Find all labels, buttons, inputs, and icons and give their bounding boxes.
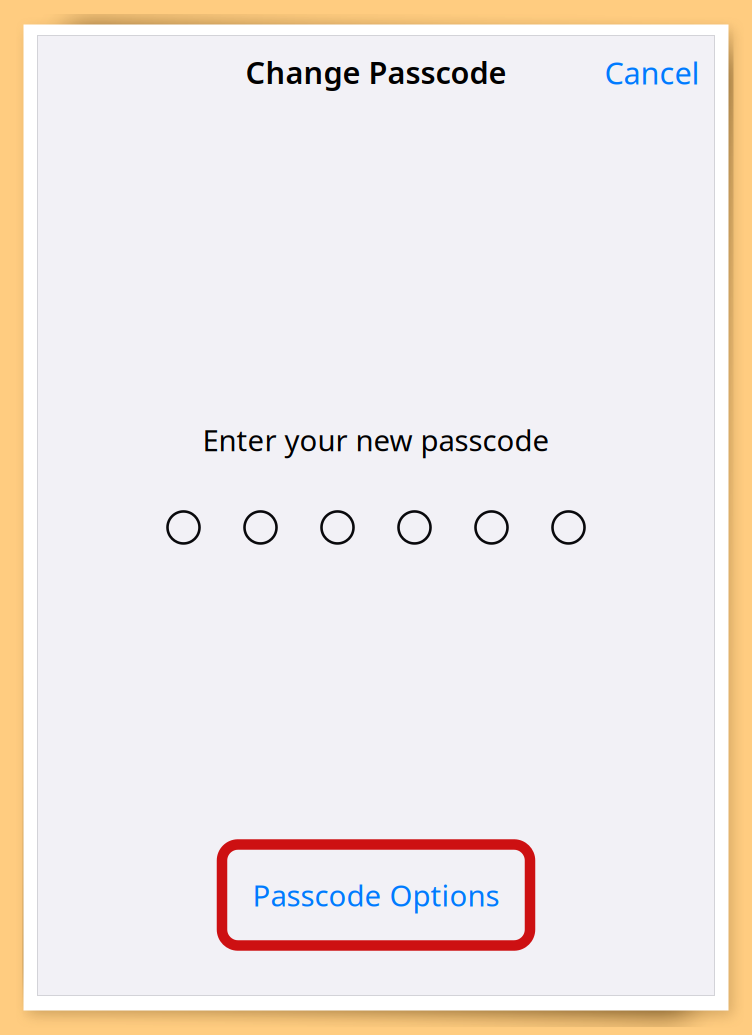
- button[interactable]: Passcode Options: [222, 844, 530, 945]
- staticText: Passcode Options: [252, 875, 499, 914]
- button[interactable]: Cancel: [598, 42, 705, 103]
- staticText: Enter your new passcode: [202, 420, 549, 459]
- staticText: Change Passcode: [245, 52, 506, 92]
- staticText: Cancel: [604, 52, 699, 93]
